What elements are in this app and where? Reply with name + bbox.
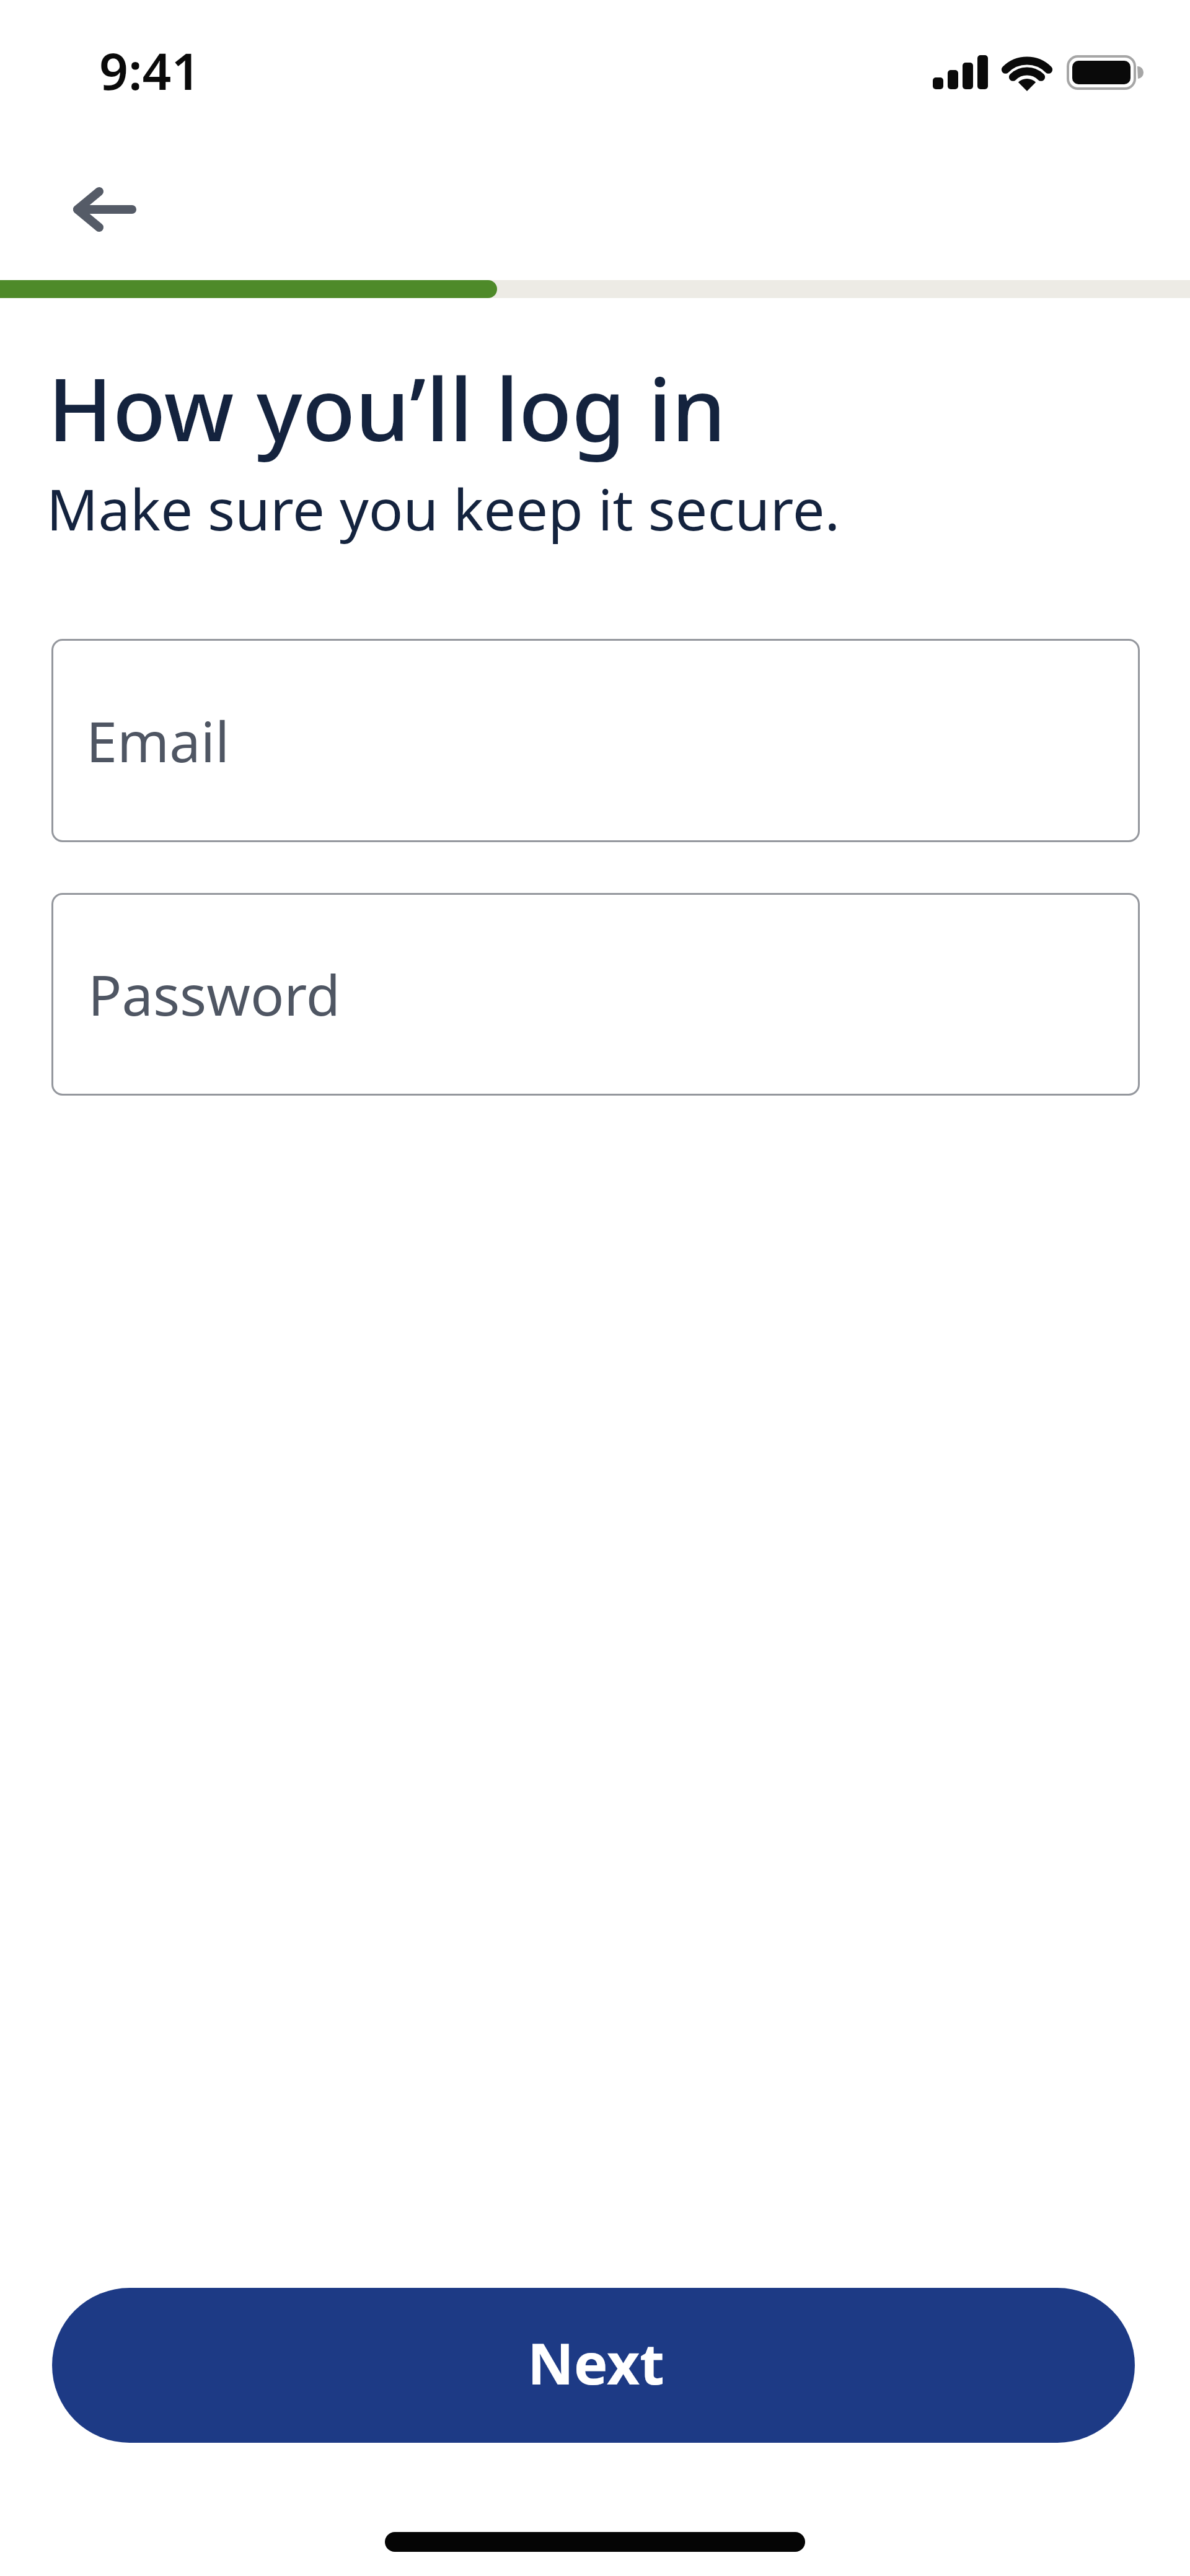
staticText: Next xyxy=(527,2324,664,2401)
staticText: Password xyxy=(88,956,341,1032)
staticText: Make sure you keep it secure. xyxy=(46,470,840,547)
staticText: How you’ll log in xyxy=(48,348,726,467)
button[interactable]: Password xyxy=(51,893,1140,1096)
button[interactable]: Next xyxy=(52,2288,1135,2443)
staticText: Email xyxy=(86,703,230,779)
staticText: 9:41 xyxy=(99,35,201,105)
button[interactable] xyxy=(50,161,149,260)
button[interactable]: Email xyxy=(51,639,1140,842)
